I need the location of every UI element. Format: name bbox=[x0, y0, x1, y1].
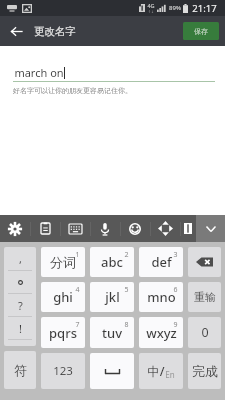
staticText: 9 bbox=[173, 320, 178, 330]
button[interactable]: , bbox=[4, 247, 36, 270]
button[interactable]: Move keyboard bbox=[150, 215, 180, 242]
staticText: 4 bbox=[75, 285, 80, 295]
button[interactable]: 保存 bbox=[183, 22, 219, 40]
staticText: 重输 bbox=[194, 290, 216, 304]
staticText: mno bbox=[147, 288, 176, 306]
button[interactable]: wxyz bbox=[139, 317, 183, 348]
button[interactable]: 123 bbox=[41, 353, 85, 389]
staticText: 完成 bbox=[192, 363, 218, 379]
button[interactable]: 分词 bbox=[41, 247, 85, 277]
staticText: 分词 bbox=[50, 254, 76, 270]
staticText: pqrs bbox=[49, 324, 77, 342]
staticText: 中/ bbox=[147, 363, 165, 380]
button[interactable]: Back bbox=[0, 16, 33, 46]
staticText: 好名字可以让你的朋友更容易记住你。 bbox=[13, 86, 132, 95]
staticText: 0 bbox=[201, 324, 209, 341]
button[interactable]: Emoji bbox=[120, 215, 150, 242]
button[interactable]: tuv bbox=[90, 317, 134, 348]
staticText: 3 bbox=[173, 250, 178, 260]
button[interactable]: 符 bbox=[4, 351, 36, 389]
button[interactable]: jkl bbox=[90, 282, 134, 312]
button[interactable]: Split keyboard bbox=[180, 215, 196, 242]
button[interactable]: Voice input bbox=[90, 215, 120, 242]
staticText: def bbox=[151, 253, 172, 271]
button[interactable]: Backspace bbox=[188, 247, 221, 277]
staticText: ! bbox=[19, 321, 22, 336]
staticText: 8 bbox=[124, 320, 129, 330]
staticText: 5 bbox=[124, 285, 129, 295]
button[interactable]: Clipboard bbox=[30, 215, 60, 242]
button[interactable]: def bbox=[139, 247, 183, 277]
button[interactable]: Settings bbox=[0, 215, 30, 242]
button[interactable]: 完成 bbox=[188, 353, 221, 389]
button[interactable]: Hide keyboard bbox=[196, 215, 225, 242]
staticText: jkl bbox=[105, 288, 120, 306]
button[interactable]: abc bbox=[90, 247, 134, 277]
button[interactable]: 重输 bbox=[188, 282, 221, 312]
staticText: 89% bbox=[169, 4, 181, 12]
staticText: En bbox=[165, 369, 175, 380]
button[interactable]: mno bbox=[139, 282, 183, 312]
staticText: 6 bbox=[173, 285, 178, 295]
staticText: 更改名字 bbox=[34, 25, 76, 38]
button[interactable]: 0 bbox=[188, 317, 221, 348]
button[interactable]: 中/ bbox=[139, 353, 183, 389]
staticText: , bbox=[19, 251, 22, 266]
button[interactable]: ! bbox=[4, 317, 36, 339]
staticText: ghi bbox=[53, 288, 73, 306]
button[interactable]: Keyboard layout bbox=[60, 215, 90, 242]
staticText: abc bbox=[101, 253, 123, 271]
staticText: 21:17 bbox=[192, 2, 217, 15]
staticText: ? bbox=[18, 298, 23, 313]
staticText: 4G bbox=[147, 2, 155, 9]
button[interactable]: Period bbox=[4, 271, 36, 293]
staticText: 7 bbox=[75, 320, 80, 330]
button[interactable]: ? bbox=[4, 294, 36, 316]
button[interactable]: ghi bbox=[41, 282, 85, 312]
staticText: wxyz bbox=[146, 324, 177, 342]
staticText: 123 bbox=[53, 363, 73, 379]
staticText: tuv bbox=[102, 324, 122, 342]
staticText: ↑↓ bbox=[148, 10, 154, 14]
staticText: 符 bbox=[14, 362, 27, 378]
staticText: 1 bbox=[75, 250, 80, 260]
button[interactable]: Space bbox=[90, 353, 134, 389]
button[interactable]: pqrs bbox=[41, 317, 85, 348]
staticText: march on bbox=[14, 65, 64, 80]
staticText: 保存 bbox=[194, 27, 208, 36]
staticText: 2 bbox=[124, 250, 129, 260]
